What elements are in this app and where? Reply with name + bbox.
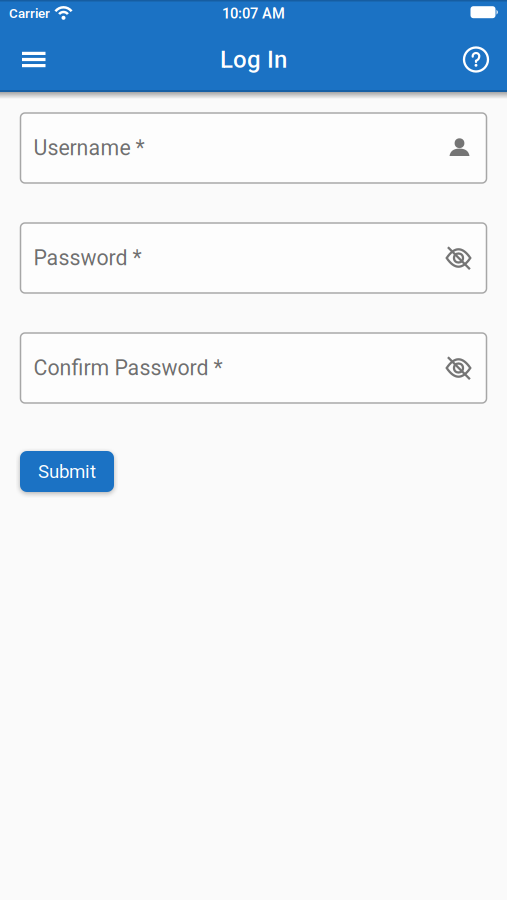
staticText: Username * [33, 136, 144, 160]
staticText: Carrier [9, 6, 50, 21]
button[interactable]: Help [456, 39, 496, 79]
button[interactable]: Menu [12, 42, 55, 77]
button[interactable]: Show password [443, 353, 473, 383]
staticText: Confirm Password * [33, 356, 222, 380]
button[interactable]: Password [0, 223, 507, 293]
staticText: Submit [38, 461, 96, 482]
staticText: Log In [220, 46, 287, 73]
staticText: Password * [33, 246, 141, 270]
button[interactable]: Show password [443, 243, 473, 273]
button[interactable]: Submit [20, 451, 114, 492]
staticText: 10:07 AM [222, 5, 285, 22]
button[interactable]: Confirm Password [0, 333, 507, 403]
button[interactable]: Username [0, 113, 507, 183]
